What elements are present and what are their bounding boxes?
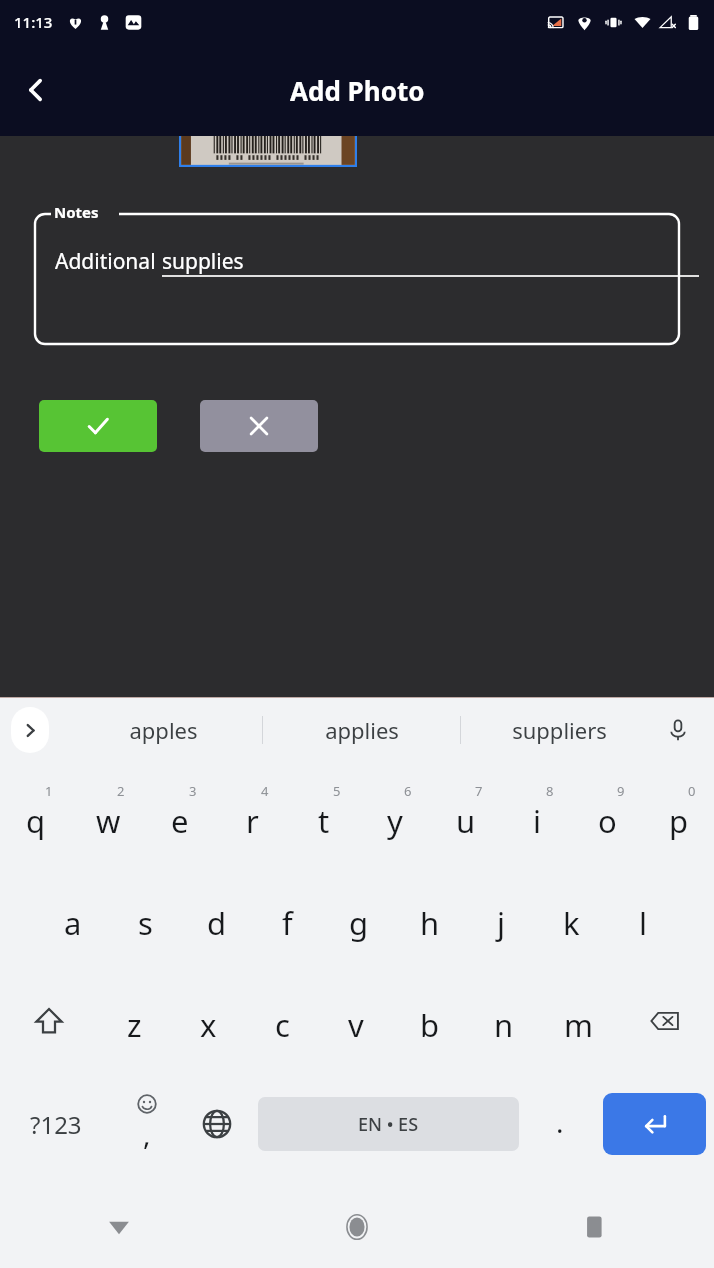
staticText: . <box>556 1103 564 1141</box>
button[interactable]: Cancel <box>200 400 318 452</box>
button[interactable]: Hide keyboard <box>0 1185 238 1268</box>
staticText: supplies <box>162 247 244 276</box>
button[interactable]: g <box>323 873 394 965</box>
staticText: Additional <box>55 247 162 276</box>
button[interactable]: s <box>109 873 181 965</box>
button[interactable]: m <box>541 975 615 1067</box>
staticText: e <box>171 800 189 842</box>
staticText: apples <box>129 715 198 745</box>
staticText: j <box>497 902 505 944</box>
staticText: p <box>669 800 689 842</box>
staticText: t <box>318 800 330 842</box>
button[interactable]: 2 <box>72 771 144 863</box>
staticText: 5 <box>333 782 341 800</box>
staticText: x <box>200 1004 217 1046</box>
staticText: EN • ES <box>358 1112 419 1137</box>
staticText: ?123 <box>30 1108 82 1141</box>
staticText: n <box>494 1004 514 1046</box>
button[interactable]: f <box>252 873 323 965</box>
button[interactable]: j <box>465 873 536 965</box>
button[interactable] <box>179 136 357 167</box>
staticText: 9 <box>617 782 625 800</box>
button[interactable]: Confirm <box>39 400 157 452</box>
button[interactable]: b <box>393 975 467 1067</box>
button[interactable]: applies <box>263 702 460 758</box>
staticText: g <box>349 902 369 944</box>
staticText: u <box>456 800 476 842</box>
button[interactable]: Period <box>525 1078 595 1170</box>
staticText: 7 <box>475 782 483 800</box>
button[interactable]: 7 <box>430 771 501 863</box>
button[interactable]: apples <box>64 702 262 758</box>
button[interactable]: Shift <box>0 975 98 1067</box>
staticText: 0 <box>688 782 696 800</box>
staticText: suppliers <box>512 715 607 745</box>
staticText: f <box>282 902 293 944</box>
staticText: , <box>143 1115 151 1153</box>
staticText: r <box>246 800 259 842</box>
button[interactable]: z <box>98 975 171 1067</box>
button[interactable]: Back <box>8 62 64 118</box>
staticText: s <box>138 902 153 944</box>
button[interactable]: 8 <box>501 771 572 863</box>
button[interactable]: Comma <box>112 1078 182 1170</box>
staticText: 6 <box>404 782 412 800</box>
staticText: 1 <box>45 782 53 800</box>
button[interactable]: 5 <box>288 771 359 863</box>
button[interactable]: 9 <box>572 771 643 863</box>
button[interactable]: ?123 <box>0 1078 112 1170</box>
button[interactable]: 3 <box>144 771 216 863</box>
staticText: 4 <box>261 782 269 800</box>
staticText: 3 <box>189 782 197 800</box>
staticText: y <box>387 800 403 842</box>
button[interactable]: Enter <box>603 1093 706 1155</box>
staticText: 8 <box>546 782 554 800</box>
staticText: a <box>64 902 82 944</box>
button[interactable]: Recent apps <box>476 1185 714 1268</box>
staticText: h <box>420 902 440 944</box>
button[interactable]: d <box>181 873 252 965</box>
staticText: v <box>348 1004 364 1046</box>
staticText: Notes <box>54 202 99 222</box>
button[interactable]: Notes <box>35 200 679 344</box>
button[interactable]: l <box>607 873 678 965</box>
staticText: o <box>598 800 617 842</box>
button[interactable]: More suggestions <box>11 707 49 753</box>
button[interactable]: v <box>319 975 393 1067</box>
staticText: 11:13 <box>14 12 53 32</box>
button[interactable]: h <box>394 873 465 965</box>
button[interactable]: 4 <box>216 771 288 863</box>
button[interactable]: suppliers <box>461 702 658 758</box>
button[interactable]: n <box>467 975 541 1067</box>
staticText: b <box>420 1004 440 1046</box>
staticText: k <box>563 902 580 944</box>
staticText: m <box>564 1004 593 1046</box>
staticText: applies <box>325 715 399 745</box>
staticText: q <box>26 800 46 842</box>
staticText: w <box>96 800 121 842</box>
button[interactable]: Backspace <box>615 975 714 1067</box>
button[interactable]: Home <box>238 1185 476 1268</box>
button[interactable]: k <box>536 873 607 965</box>
staticText: Add Photo <box>290 73 425 108</box>
staticText: c <box>275 1004 290 1046</box>
staticText: l <box>639 902 647 944</box>
button[interactable]: Space <box>258 1097 519 1151</box>
button[interactable]: a <box>37 873 109 965</box>
button[interactable]: 6 <box>359 771 430 863</box>
button[interactable]: c <box>245 975 319 1067</box>
staticText: i <box>533 800 541 842</box>
button[interactable]: 1 <box>0 771 72 863</box>
staticText: d <box>207 902 227 944</box>
button[interactable]: x <box>171 975 245 1067</box>
button[interactable]: Voice input <box>656 708 700 752</box>
button[interactable]: 0 <box>643 771 714 863</box>
staticText: z <box>127 1004 142 1046</box>
staticText: 2 <box>117 782 125 800</box>
button[interactable]: Change language <box>182 1078 252 1170</box>
